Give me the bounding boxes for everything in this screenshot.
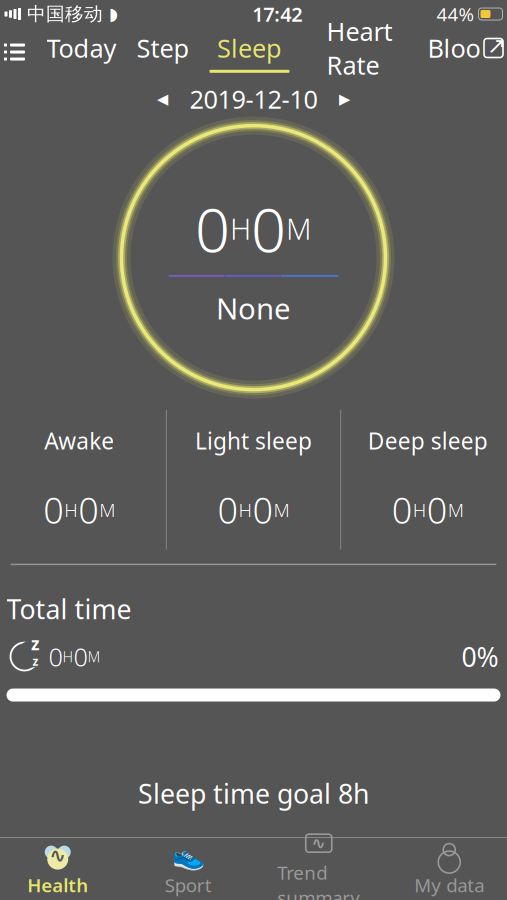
staticText: 0 bbox=[217, 486, 238, 534]
staticText: z bbox=[32, 653, 38, 669]
staticText: Awake bbox=[44, 426, 114, 456]
button[interactable]: Today bbox=[36, 31, 126, 73]
button[interactable]: Share bbox=[480, 35, 507, 69]
staticText: 0 bbox=[73, 640, 87, 673]
staticText: H bbox=[238, 497, 252, 522]
staticText: 17:42 bbox=[252, 1, 302, 27]
staticText: Sport bbox=[165, 873, 212, 897]
staticText: ▶ bbox=[339, 90, 350, 107]
staticText: 0 bbox=[48, 640, 62, 673]
staticText: Deep sleep bbox=[368, 426, 488, 456]
staticText: Total time bbox=[6, 591, 131, 626]
staticText: 44% bbox=[436, 2, 474, 26]
button[interactable]: ∿ bbox=[253, 822, 384, 900]
staticText: Bloo bbox=[427, 31, 480, 65]
staticText: 中国移动 bbox=[27, 2, 103, 25]
staticText: 0 bbox=[252, 486, 273, 534]
staticText: 0 bbox=[392, 486, 413, 534]
staticText: M bbox=[99, 497, 115, 522]
staticText: Sleep bbox=[217, 31, 282, 65]
staticText: H bbox=[230, 209, 251, 248]
staticText: ∿ bbox=[49, 844, 66, 867]
staticText: H bbox=[413, 497, 427, 522]
staticText: Health bbox=[27, 873, 88, 897]
staticText: ◗ bbox=[109, 4, 118, 24]
button[interactable]: Step bbox=[126, 31, 199, 73]
staticText: 0 bbox=[427, 486, 448, 534]
staticText: ◀ bbox=[157, 90, 168, 107]
staticText: Today bbox=[46, 31, 116, 65]
staticText: 0% bbox=[461, 639, 498, 674]
staticText: Trend summary bbox=[277, 860, 360, 900]
staticText: M bbox=[87, 647, 100, 666]
staticText: H bbox=[64, 497, 78, 522]
staticText: Heart Rate bbox=[326, 14, 392, 82]
staticText: 0 bbox=[78, 486, 99, 534]
button[interactable]: Heart Rate bbox=[299, 14, 419, 90]
staticText: M bbox=[286, 209, 312, 248]
button[interactable]: Next day bbox=[331, 86, 357, 112]
button[interactable]: Menu bbox=[0, 29, 36, 75]
staticText: Sleep time goal 8h bbox=[138, 776, 369, 811]
staticText: Step bbox=[136, 31, 189, 65]
button[interactable]: 👟 bbox=[123, 835, 253, 900]
staticText: 0 bbox=[195, 188, 230, 269]
staticText: 👟 bbox=[172, 840, 205, 871]
button[interactable]: Bloo bbox=[419, 31, 480, 73]
button[interactable]: ∿ bbox=[0, 835, 123, 900]
staticText: z bbox=[31, 632, 40, 655]
staticText: ↗ bbox=[487, 33, 506, 58]
button[interactable]: Previous day bbox=[149, 86, 175, 112]
staticText: M bbox=[448, 497, 464, 522]
staticText: Light sleep bbox=[195, 426, 312, 456]
staticText: M bbox=[273, 497, 289, 522]
staticText: 0 bbox=[251, 188, 286, 269]
button[interactable]: Sleep bbox=[199, 31, 299, 73]
button[interactable]: My data bbox=[384, 835, 507, 900]
staticText: My data bbox=[414, 873, 484, 897]
staticText: H bbox=[62, 647, 73, 666]
staticText: 0 bbox=[43, 486, 64, 534]
staticText: None bbox=[216, 289, 291, 328]
staticText: ∿ bbox=[311, 833, 326, 853]
staticText: 2019-12-10 bbox=[189, 82, 317, 116]
